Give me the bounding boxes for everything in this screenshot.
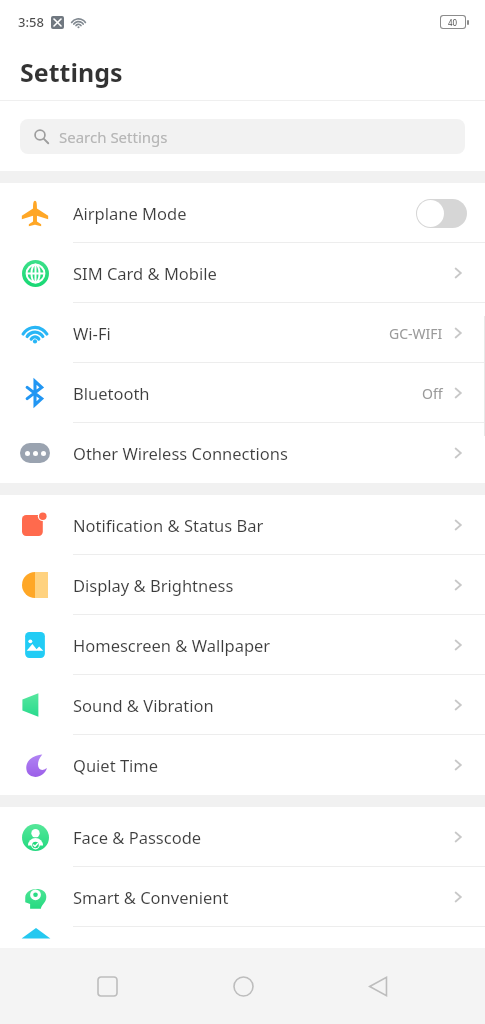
button[interactable]: Sound & Vibration: [0, 675, 485, 735]
staticText: Airplane Mode: [73, 202, 416, 224]
button[interactable]: [416, 199, 467, 228]
button[interactable]: Quiet Time: [0, 735, 485, 795]
staticText: SIM Card & Mobile: [73, 262, 451, 284]
staticText: Off: [422, 384, 443, 403]
button[interactable]: Recent apps: [79, 958, 135, 1014]
staticText: Other Wireless Connections: [73, 442, 451, 464]
button[interactable]: Home: [215, 958, 271, 1014]
staticText: Search Settings: [59, 127, 168, 147]
button[interactable]: Airplane Mode: [0, 183, 485, 243]
button[interactable]: Smart & Convenient: [0, 867, 485, 927]
staticText: Quiet Time: [73, 754, 451, 776]
staticText: GC-WIFI: [389, 324, 443, 343]
staticText: 40: [448, 17, 458, 28]
staticText: 3:58: [18, 13, 44, 31]
button[interactable]: SIM Card & Mobile: [0, 243, 485, 303]
staticText: Notification & Status Bar: [73, 514, 451, 536]
staticText: Settings: [20, 55, 123, 89]
button[interactable]: Search Settings: [20, 119, 465, 154]
button[interactable]: Wi-Fi: [0, 303, 485, 363]
staticText: Face & Passcode: [73, 826, 451, 848]
button[interactable]: Homescreen & Wallpaper: [0, 615, 485, 675]
staticText: Wi-Fi: [73, 322, 389, 344]
staticText: Homescreen & Wallpaper: [73, 634, 451, 656]
staticText: Sound & Vibration: [73, 694, 451, 716]
button[interactable]: Face & Passcode: [0, 807, 485, 867]
staticText: Display & Brightness: [73, 574, 451, 596]
staticText: Smart & Convenient: [73, 886, 451, 908]
button[interactable]: Other Wireless Connections: [0, 423, 485, 483]
button[interactable]: Bluetooth: [0, 363, 485, 423]
staticText: Bluetooth: [73, 382, 422, 404]
button[interactable]: Notification & Status Bar: [0, 495, 485, 555]
button[interactable]: Display & Brightness: [0, 555, 485, 615]
button[interactable]: Back: [350, 958, 406, 1014]
